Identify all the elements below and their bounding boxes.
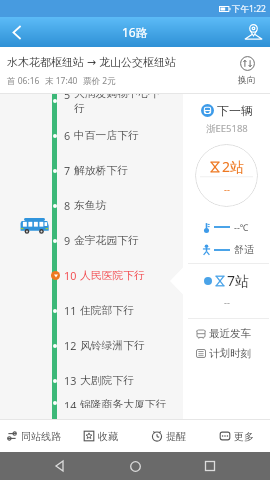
staticText: 风铃绿洲下行: [80, 339, 145, 353]
button[interactable]: 13: [0, 363, 183, 398]
staticText: 10: [64, 268, 77, 283]
staticText: 换向: [238, 74, 256, 85]
staticText: 浙EE5188: [206, 122, 248, 135]
staticText: 金宇花园下行: [74, 234, 139, 248]
button[interactable]: Home: [120, 452, 150, 480]
button[interactable]: 7: [0, 153, 183, 188]
staticText: 2站: [222, 157, 245, 176]
staticText: 13: [64, 373, 77, 388]
button[interactable]: Back: [0, 17, 34, 47]
button[interactable]: 同站线路: [0, 420, 67, 452]
staticText: 收藏: [98, 430, 118, 443]
staticText: --: [224, 183, 230, 195]
staticText: 中百一店下行: [74, 129, 139, 143]
button[interactable]: Back: [45, 452, 75, 480]
button[interactable]: 9: [0, 223, 183, 258]
staticText: 下一辆: [217, 103, 253, 118]
button[interactable]: 10: [0, 258, 183, 293]
button[interactable]: Map: [236, 17, 270, 47]
staticText: 大剧院下行: [80, 374, 134, 388]
button[interactable]: 14: [0, 398, 183, 408]
staticText: 舒适: [234, 243, 254, 256]
button[interactable]: 6: [0, 118, 183, 153]
staticText: 12: [64, 338, 77, 353]
staticText: 计划时刻: [209, 347, 251, 360]
button[interactable]: 最近发车: [196, 327, 251, 340]
staticText: 人民医院下行: [80, 269, 145, 283]
button[interactable]: 收藏: [67, 420, 134, 452]
button[interactable]: 8: [0, 188, 183, 223]
staticText: 解放桥下行: [74, 164, 128, 178]
staticText: 东鱼坊: [74, 199, 107, 213]
staticText: 水木花都枢纽站 → 龙山公交枢纽站: [7, 54, 176, 69]
staticText: 最近发车: [209, 327, 251, 340]
staticText: 大润发购物中心下 行: [74, 94, 161, 115]
staticText: 下午1:22: [232, 3, 266, 15]
button[interactable]: 2站: [195, 144, 258, 207]
button[interactable]: 更多: [202, 420, 270, 452]
button[interactable]: 5: [0, 94, 183, 118]
staticText: 9: [64, 233, 71, 248]
button[interactable]: 计划时刻: [196, 347, 251, 360]
staticText: 5: [64, 94, 71, 102]
button[interactable]: 提醒: [134, 420, 202, 452]
staticText: 8: [64, 198, 71, 213]
button[interactable]: 11: [0, 293, 183, 328]
staticText: --℃: [234, 221, 249, 233]
staticText: 11: [64, 303, 77, 318]
staticText: 首 06:16: [7, 75, 40, 87]
staticText: 6: [64, 128, 71, 143]
staticText: 提醒: [166, 430, 186, 443]
button[interactable]: 12: [0, 328, 183, 363]
staticText: 住院部下行: [80, 304, 134, 318]
staticText: 16路: [122, 24, 148, 40]
staticText: 锦隆商务大厦下行: [80, 398, 167, 408]
button[interactable]: 换向: [224, 47, 270, 93]
staticText: 末 17:40: [45, 75, 78, 87]
staticText: 14: [64, 398, 77, 408]
staticText: 更多: [234, 430, 254, 443]
staticText: 同站线路: [21, 430, 61, 443]
staticText: 7: [64, 163, 71, 178]
staticText: --: [224, 296, 230, 308]
button[interactable]: Recents: [195, 452, 225, 480]
staticText: 7站: [227, 271, 250, 290]
staticText: 票价 2元: [83, 75, 116, 87]
